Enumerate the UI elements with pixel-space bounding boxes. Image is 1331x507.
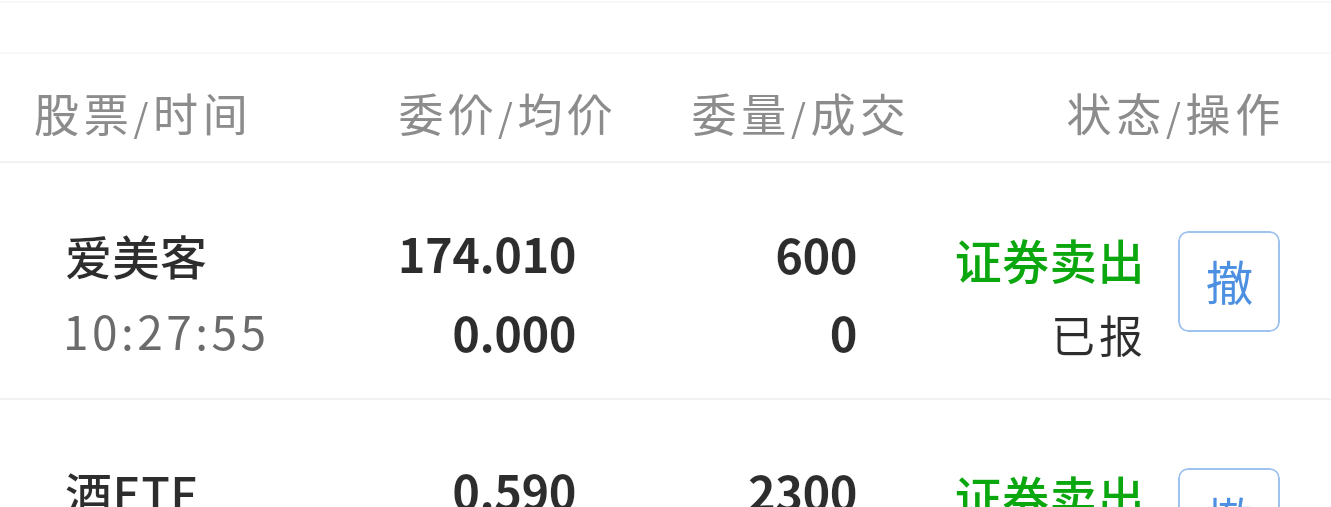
staticText: 10:27:55: [63, 297, 270, 364]
button[interactable]: 爱美客 证券卖出 已报: [0, 163, 1331, 400]
staticText: 已报: [1051, 302, 1147, 366]
staticText: 酒ETF: [65, 457, 198, 507]
button[interactable]: 酒ETF 证券卖出 已报: [0, 400, 1331, 507]
staticText: 爱美客: [65, 220, 208, 288]
button[interactable]: 撤单: [1178, 231, 1280, 332]
staticText: 撤: [1206, 482, 1253, 507]
staticText: 0.000: [452, 297, 576, 365]
staticText: 174.010: [397, 218, 576, 286]
staticText: 600: [775, 219, 857, 287]
staticText: 委价/均价: [398, 80, 617, 145]
staticText: 委量/成交: [691, 80, 910, 145]
staticText: 0: [829, 297, 857, 365]
staticText: 撤: [1206, 245, 1253, 313]
staticText: 2300: [747, 456, 857, 507]
staticText: 证券卖出: [954, 224, 1145, 292]
staticText: 0.590: [452, 455, 576, 507]
button[interactable]: 撤单: [1178, 468, 1280, 507]
staticText: 状态/操作: [1066, 80, 1285, 145]
staticText: 证券卖出: [954, 461, 1145, 507]
staticText: 股票/时间: [34, 80, 253, 145]
